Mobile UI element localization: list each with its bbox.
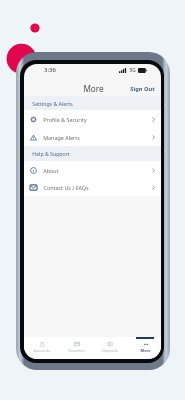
staticText: Contact Us / FAQs [43,184,89,191]
button[interactable]: Profile & Security [24,110,161,128]
other: Transfers [74,341,80,347]
staticText: About [43,167,59,174]
staticText: Transfers [68,348,85,353]
button[interactable]: Accounts [24,337,59,359]
button[interactable]: Deposits [93,337,127,359]
staticText: Profile & Security [43,116,87,123]
staticText: Help & Support [32,150,70,157]
other: More [143,341,149,347]
staticText: Settings & Alerts [32,100,73,107]
staticText: More [140,348,151,353]
staticText: Manage Alerts [43,134,80,141]
button[interactable]: Transfers [59,337,93,359]
staticText: Sign Out [130,85,155,93]
staticText: Accounts [33,348,50,353]
staticText: More [83,83,104,94]
button[interactable]: Contact Us / FAQs [24,179,161,196]
staticText: 5G [129,67,136,74]
staticText: 3:36 [44,66,56,74]
button[interactable]: Manage Alerts [24,128,161,146]
button[interactable]: More [127,337,161,359]
staticText: Deposits [102,348,118,353]
other: Deposits [107,341,113,347]
button[interactable]: Sign Out [124,82,161,96]
other: Accounts [39,341,45,347]
button[interactable]: About [24,161,161,179]
